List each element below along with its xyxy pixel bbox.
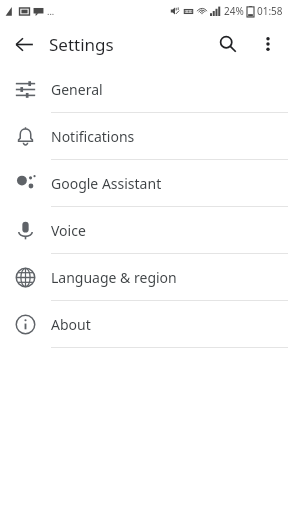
- staticText: About: [51, 315, 91, 334]
- button[interactable]: Language & region: [0, 254, 288, 300]
- staticText: Google Assistant: [51, 174, 162, 193]
- button[interactable]: Google Assistant: [0, 160, 288, 206]
- button[interactable]: Back: [8, 28, 40, 60]
- button[interactable]: About: [0, 301, 288, 347]
- staticText: Settings: [49, 33, 114, 56]
- staticText: Notifications: [51, 127, 135, 146]
- button[interactable]: Voice: [0, 207, 288, 253]
- button[interactable]: Notifications: [0, 113, 288, 159]
- staticText: 24%: [224, 4, 244, 18]
- button[interactable]: More options: [248, 24, 288, 64]
- staticText: Language & region: [51, 268, 177, 287]
- staticText: ...: [47, 5, 55, 17]
- staticText: Voice: [51, 221, 86, 240]
- staticText: General: [51, 80, 103, 99]
- staticText: 01:58: [257, 4, 283, 18]
- button[interactable]: Search: [208, 24, 248, 64]
- button[interactable]: General: [0, 66, 288, 112]
